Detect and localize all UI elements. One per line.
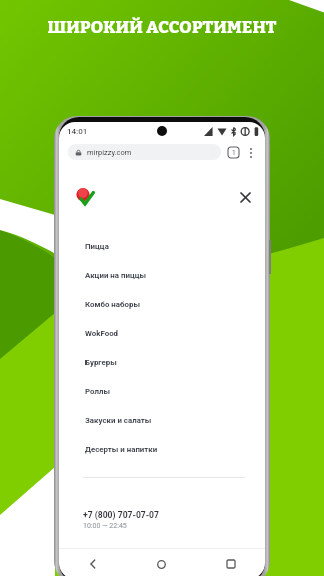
button[interactable]: Recent apps: [196, 549, 265, 576]
staticText: 10:00 — 22:45: [83, 522, 127, 530]
button[interactable]: Акции на пиццы: [63, 262, 265, 288]
staticText: Закуски и салаты: [85, 416, 152, 425]
button[interactable]: Закуски и салаты: [63, 407, 265, 433]
button[interactable]: More options: [244, 146, 257, 159]
button[interactable]: Пицца: [63, 233, 265, 259]
button[interactable]: Комбо наборы: [63, 291, 265, 317]
button[interactable]: Роллы: [63, 378, 265, 404]
staticText: Бургеры: [85, 358, 117, 367]
button[interactable]: Close menu: [237, 189, 254, 206]
staticText: ШИРОКИЙ АССОРТИМЕНТ: [47, 17, 277, 37]
staticText: WokFood: [85, 329, 119, 338]
button[interactable]: Back: [59, 549, 127, 576]
staticText: 1: [232, 149, 236, 157]
staticText: Акции на пиццы: [85, 271, 147, 280]
staticText: Роллы: [85, 387, 110, 396]
staticText: Пицца: [85, 242, 109, 251]
button[interactable]: Десерты и напитки: [63, 436, 265, 462]
button[interactable]: WokFood: [63, 320, 265, 346]
staticText: Комбо наборы: [85, 300, 140, 309]
button[interactable]: mirpizzy.com: [68, 144, 221, 160]
staticText: mirpizzy.com: [87, 148, 132, 157]
staticText: Десерты и напитки: [85, 445, 158, 454]
staticText: +7 (800) 707-07-07: [83, 510, 159, 520]
button[interactable]: Home: [127, 549, 196, 576]
button[interactable]: Бургеры: [63, 349, 265, 375]
staticText: 14:01: [67, 127, 88, 136]
button[interactable]: Mir Pizzy logo: [75, 187, 95, 207]
button[interactable]: Tabs: [227, 146, 240, 159]
